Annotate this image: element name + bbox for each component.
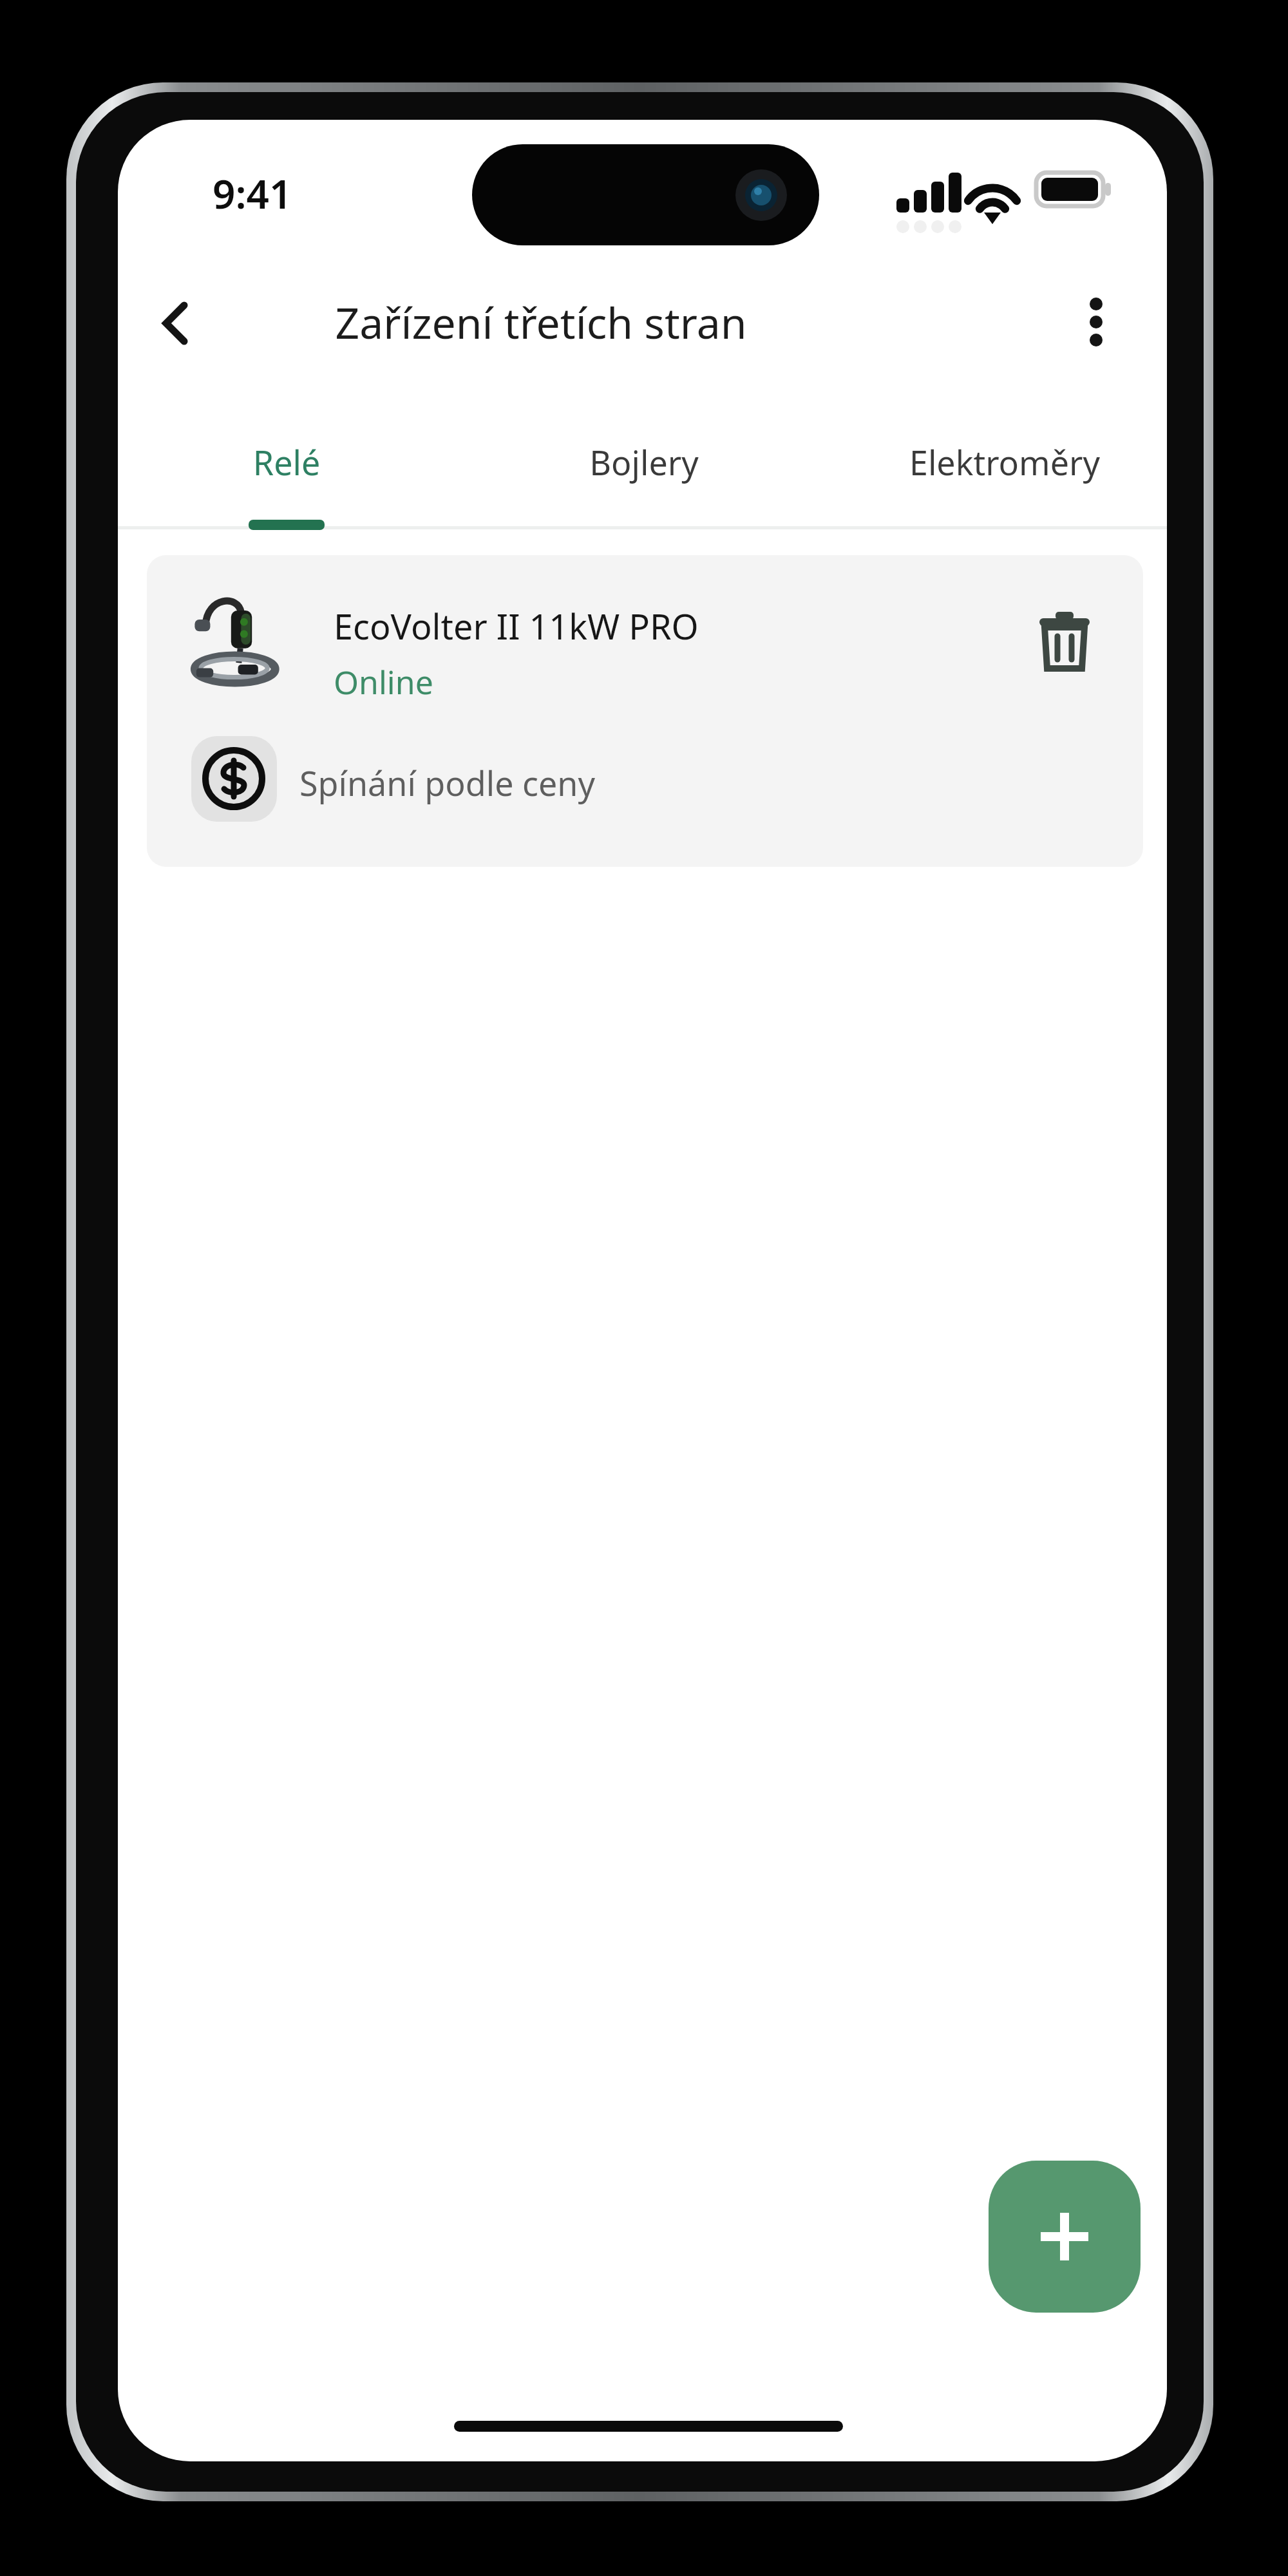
staticText: Relé [213,439,361,485]
button[interactable]: Price based switching [191,736,277,822]
button[interactable]: Add device [989,2161,1141,2313]
staticText: Bojlery [554,439,734,485]
staticText: Zařízení třetích stran [277,293,805,351]
button[interactable] [535,419,757,531]
button[interactable]: Delete device [1024,602,1108,686]
button[interactable] [174,419,399,531]
staticText: EcoVolter II 11kW PRO [334,602,699,650]
staticText: Online [334,660,433,704]
staticText: Elektroměry [889,439,1121,485]
staticText: Spínání podle ceny [299,760,595,806]
staticText: 9:41 [213,166,292,220]
button[interactable]: Back [132,277,225,370]
button[interactable]: More options [1050,277,1143,370]
button[interactable] [147,555,1143,867]
button[interactable] [892,419,1150,531]
